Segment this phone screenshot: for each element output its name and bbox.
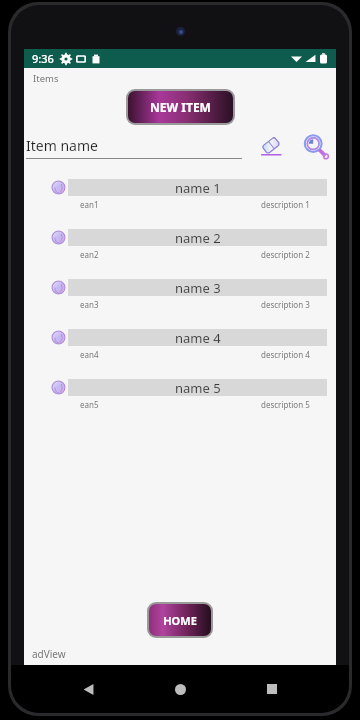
button[interactable]: name 1 — [24, 179, 336, 210]
staticText: description 4 — [261, 349, 310, 360]
staticText: adView — [32, 647, 66, 661]
staticText: name 4 — [175, 329, 221, 346]
staticText: name 5 — [175, 379, 221, 396]
button[interactable]: name 2 — [24, 229, 336, 260]
staticText: description 3 — [261, 299, 310, 310]
staticText: ean4 — [80, 349, 99, 360]
staticText: description 2 — [261, 249, 310, 260]
button[interactable]: name 4 — [24, 329, 336, 360]
staticText: 9:36 — [32, 51, 54, 66]
staticText: Item name — [26, 136, 98, 155]
button[interactable]: Back — [73, 674, 103, 704]
staticText: name 1 — [175, 179, 221, 196]
staticText: description 1 — [261, 199, 310, 210]
button[interactable]: name 5 — [24, 379, 336, 410]
staticText: name 3 — [175, 279, 221, 296]
staticText: ean1 — [80, 199, 99, 210]
staticText: ean2 — [80, 249, 99, 260]
button[interactable]: Home — [165, 674, 195, 704]
staticText: NEW ITEM — [150, 99, 211, 115]
staticText: ean5 — [80, 399, 99, 410]
staticText: HOME — [163, 613, 197, 628]
staticText: name 2 — [175, 229, 221, 246]
button[interactable]: Search — [302, 133, 330, 161]
button[interactable]: NEW ITEM — [128, 91, 233, 123]
staticText: ean3 — [80, 299, 99, 310]
button[interactable]: HOME — [149, 604, 211, 636]
staticText: description 5 — [261, 399, 310, 410]
staticText: Items — [33, 72, 59, 85]
button[interactable]: name 3 — [24, 279, 336, 310]
button[interactable]: Clear — [258, 134, 284, 160]
button[interactable]: Recent apps — [257, 674, 287, 704]
